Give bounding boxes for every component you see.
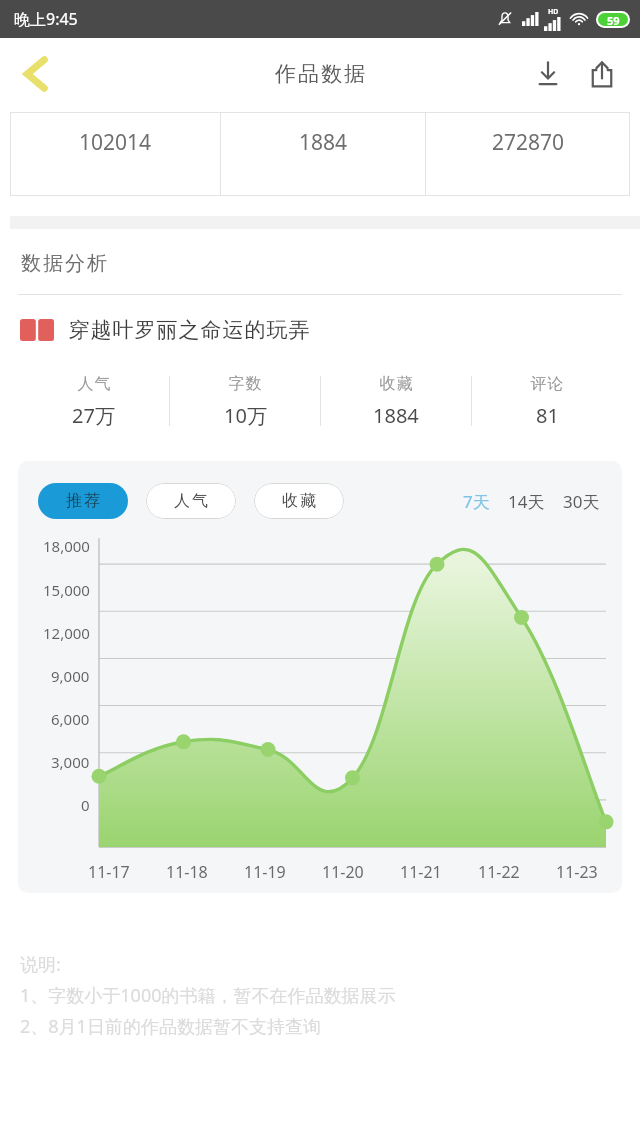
staticText: 1884 [373, 402, 419, 429]
staticText: 11-21 [400, 861, 442, 883]
button[interactable]: 穿越叶罗丽之命运的玩弄 [20, 317, 640, 343]
staticText: 收藏 [379, 374, 413, 394]
staticText: 6,000 [51, 709, 90, 729]
staticText: 人气 [173, 491, 209, 511]
button[interactable]: 102014 [10, 112, 220, 196]
staticText: 12,000 [43, 623, 90, 643]
staticText: 推荐 [65, 491, 101, 511]
button[interactable]: 14天 [506, 486, 547, 517]
staticText: 14天 [508, 490, 545, 513]
button[interactable]: 推荐 [38, 483, 128, 519]
staticText: 说明: [20, 952, 61, 977]
staticText: 9,000 [51, 666, 90, 686]
staticText: 作品数据 [274, 61, 366, 87]
staticText: 0 [81, 795, 90, 815]
staticText: 81 [536, 402, 559, 429]
button[interactable]: 7天 [461, 486, 492, 517]
staticText: 59 [607, 13, 620, 26]
staticText: 272870 [492, 128, 565, 157]
button[interactable]: 人气 [146, 483, 236, 519]
staticText: 7天 [463, 490, 490, 513]
staticText: 30天 [563, 490, 600, 513]
button[interactable]: 评论 [472, 365, 622, 437]
staticText: 晚上9:45 [14, 8, 78, 30]
staticText: 27万 [72, 402, 115, 429]
staticText: 2、8月1日前的作品数据暂不支持查询 [20, 1014, 321, 1039]
button[interactable]: 收藏 [321, 365, 471, 437]
button[interactable]: Download [524, 50, 572, 98]
staticText: 人气 [77, 374, 111, 394]
button[interactable]: 1884 [221, 112, 425, 196]
staticText: 1884 [299, 128, 348, 157]
staticText: 11-18 [166, 861, 208, 883]
staticText: 收藏 [281, 491, 317, 511]
button[interactable]: Share [578, 50, 626, 98]
staticText: 数据分析 [20, 251, 108, 276]
staticText: HD [548, 7, 559, 17]
staticText: 10万 [224, 402, 267, 429]
button[interactable]: 人气 [18, 365, 169, 437]
staticText: 11-22 [478, 861, 520, 883]
staticText: 评论 [530, 374, 564, 394]
button[interactable]: 收藏 [254, 483, 344, 519]
button[interactable]: 30天 [561, 486, 602, 517]
staticText: 15,000 [43, 580, 90, 600]
staticText: 18,000 [43, 536, 90, 556]
staticText: 11-20 [322, 861, 364, 883]
staticText: 字数 [228, 374, 262, 394]
button[interactable]: 272870 [426, 112, 630, 196]
staticText: 11-17 [88, 861, 130, 883]
staticText: 11-23 [556, 861, 598, 883]
staticText: 102014 [79, 128, 152, 157]
button[interactable]: 字数 [170, 365, 320, 437]
staticText: 3,000 [51, 752, 90, 772]
staticText: 穿越叶罗丽之命运的玩弄 [68, 317, 310, 343]
staticText: 11-19 [244, 861, 286, 883]
button[interactable]: Back [10, 48, 62, 100]
staticText: 1、字数小于1000的书籍，暂不在作品数据展示 [20, 983, 396, 1008]
